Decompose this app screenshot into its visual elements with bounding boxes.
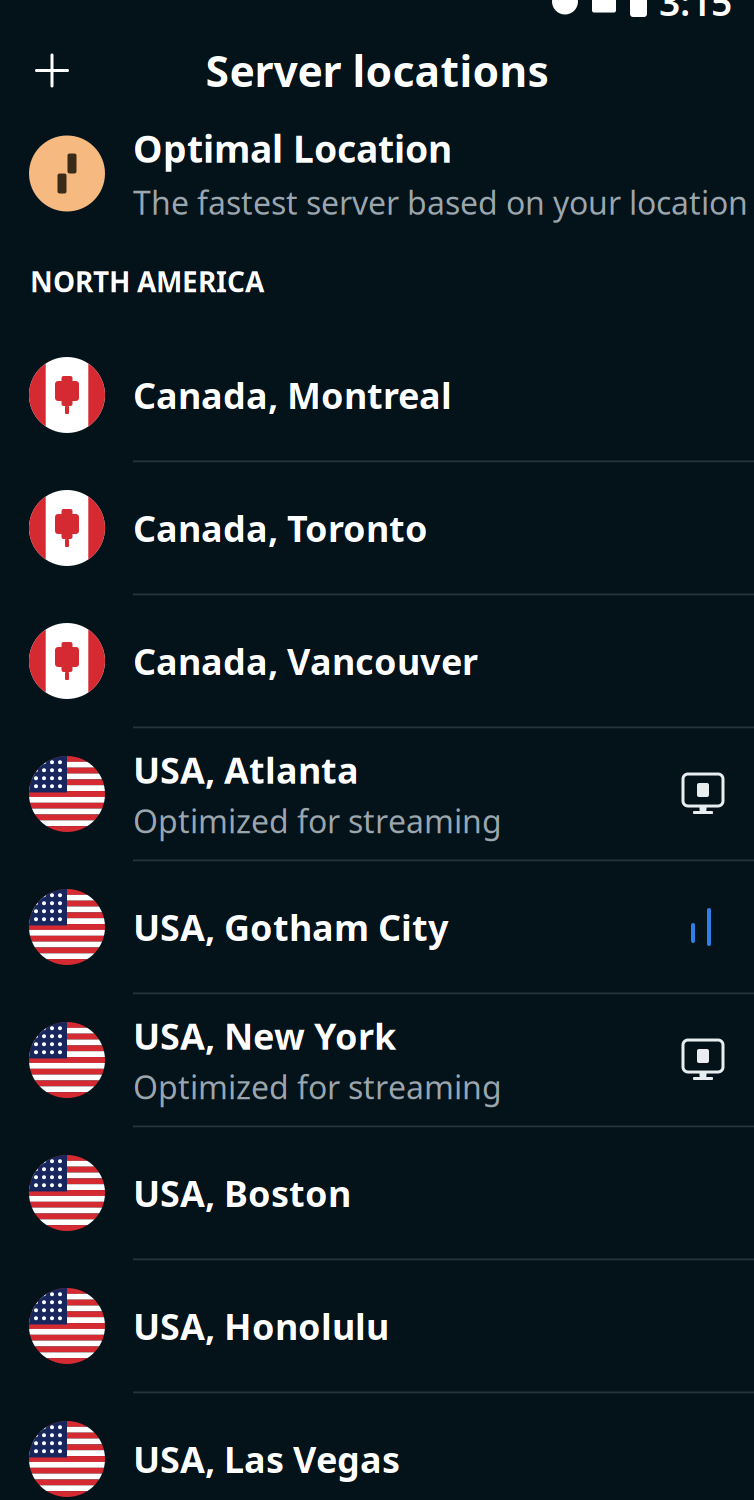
- staticText: NORTH AMERICA: [30, 263, 264, 300]
- button[interactable]: Canada, Montreal: [0, 329, 754, 460]
- button[interactable]: USA, Boston: [0, 1127, 754, 1258]
- button[interactable]: USA, Las Vegas: [0, 1393, 754, 1500]
- staticText: Optimized for streaming: [133, 800, 502, 842]
- staticText: USA, New York: [133, 1012, 396, 1060]
- staticText: USA, Atlanta: [133, 746, 359, 794]
- button[interactable]: Close: [22, 40, 82, 100]
- staticText: Canada, Vancouver: [133, 637, 478, 685]
- button[interactable]: USA, Honolulu: [0, 1260, 754, 1391]
- staticText: USA, Las Vegas: [133, 1435, 400, 1483]
- button[interactable]: USA, Atlanta: [0, 728, 754, 859]
- staticText: Server locations: [205, 42, 548, 99]
- button[interactable]: USA, New York: [0, 994, 754, 1125]
- staticText: Canada, Montreal: [133, 371, 452, 419]
- staticText: USA, Gotham City: [133, 903, 449, 951]
- button[interactable]: USA, Gotham City: [0, 861, 754, 992]
- staticText: 3:15: [659, 0, 732, 26]
- staticText: Optimized for streaming: [133, 1066, 502, 1108]
- staticText: USA, Honolulu: [133, 1302, 389, 1350]
- staticText: Optimal Location: [133, 123, 452, 173]
- staticText: The fastest server based on your locatio…: [133, 181, 748, 223]
- button[interactable]: Canada, Toronto: [0, 462, 754, 593]
- button[interactable]: Canada, Vancouver: [0, 595, 754, 726]
- staticText: USA, Boston: [133, 1169, 351, 1217]
- staticText: Canada, Toronto: [133, 504, 428, 552]
- button[interactable]: Optimal Location: [0, 113, 754, 233]
